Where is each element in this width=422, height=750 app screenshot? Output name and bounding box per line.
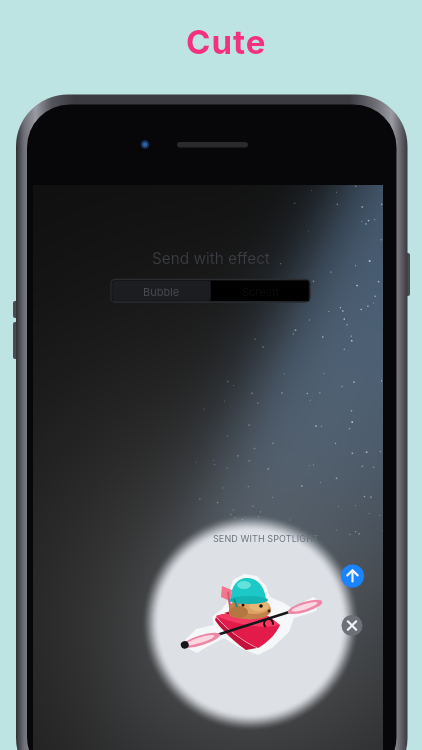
staticText: Bubble xyxy=(143,285,180,298)
staticText: Cute xyxy=(186,22,267,62)
staticText: SEND WITH SPOTLIGHT xyxy=(213,533,319,544)
staticText: Screen xyxy=(242,285,279,298)
staticText: Send with effect xyxy=(152,249,270,268)
button[interactable]: Bubble xyxy=(111,280,211,302)
button[interactable]: Screen xyxy=(211,280,310,302)
